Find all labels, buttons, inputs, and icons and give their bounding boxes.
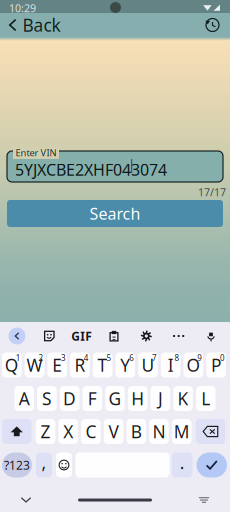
button[interactable]: Period [172, 452, 192, 477]
button[interactable]: Clipboard [103, 325, 125, 347]
button[interactable]: S [37, 386, 57, 411]
staticText: Enter VIN [15, 146, 56, 159]
staticText: Q [5, 353, 19, 376]
button[interactable]: Enter [196, 452, 227, 477]
staticText: U [141, 353, 154, 376]
staticText: H [131, 387, 144, 410]
staticText: 9 [197, 353, 202, 363]
button[interactable]: D [60, 386, 79, 411]
button[interactable]: P [206, 352, 226, 377]
button[interactable]: Backspace [196, 419, 225, 444]
button[interactable]: Switch keyboard [190, 489, 218, 511]
button[interactable]: GIF [71, 325, 93, 347]
button[interactable]: R [70, 352, 90, 377]
staticText: L [201, 387, 210, 410]
staticText: 2 [38, 353, 43, 363]
button[interactable]: W [25, 352, 44, 377]
button[interactable]: Comma [36, 452, 52, 477]
staticText: ?123 [4, 457, 30, 473]
staticText: B [131, 420, 142, 443]
staticText: O [186, 353, 200, 376]
button[interactable]: Numbers and symbols [2, 452, 32, 477]
button[interactable]: U [138, 352, 158, 377]
staticText: C [85, 420, 96, 443]
button[interactable]: L [196, 386, 216, 411]
staticText: . [180, 451, 185, 474]
staticText: 5YJXCBE2XHF043074 [15, 159, 167, 180]
staticText: E [52, 353, 62, 376]
button[interactable]: G [105, 386, 125, 411]
button[interactable]: E [47, 352, 67, 377]
button[interactable]: B [126, 419, 146, 444]
staticText: D [63, 387, 76, 410]
staticText: T [98, 353, 108, 376]
button[interactable]: M [172, 419, 191, 444]
staticText: 8 [175, 353, 180, 363]
staticText: 1 [16, 353, 21, 363]
button[interactable]: X [58, 419, 78, 444]
button[interactable]: K [173, 386, 193, 411]
button[interactable]: Shift [2, 419, 31, 444]
button[interactable]: F [82, 386, 102, 411]
button[interactable]: Z [36, 419, 55, 444]
staticText: Y [120, 353, 130, 376]
button[interactable]: Search [7, 200, 223, 227]
button[interactable]: Back [6, 325, 28, 347]
button[interactable]: Emoji [56, 452, 72, 477]
staticText: M [174, 420, 190, 443]
staticText: 3 [61, 353, 66, 363]
staticText: A [19, 387, 30, 410]
staticText: S [42, 387, 52, 410]
staticText: Back [22, 13, 60, 36]
staticText: K [178, 387, 189, 410]
staticText: 6 [129, 353, 134, 363]
staticText: Search [89, 203, 140, 224]
staticText: V [109, 420, 119, 443]
staticText: 0 [220, 353, 225, 363]
button[interactable]: I [161, 352, 180, 377]
button[interactable]: Stickers [38, 325, 60, 347]
button[interactable]: Q [2, 352, 22, 377]
button[interactable]: T [93, 352, 112, 377]
staticText: R [74, 353, 85, 376]
staticText: P [211, 353, 221, 376]
button[interactable]: Back [0, 13, 72, 37]
staticText: X [63, 420, 73, 443]
button[interactable]: V [104, 419, 123, 444]
button[interactable]: A [14, 386, 34, 411]
button[interactable]: Voice input [200, 325, 222, 347]
staticText: 7 [152, 353, 157, 363]
button[interactable]: O [184, 352, 203, 377]
staticText: Z [40, 420, 50, 443]
staticText: F [88, 387, 97, 410]
staticText: 4 [84, 353, 89, 363]
staticText: N [152, 420, 165, 443]
staticText: 10:29 [9, 1, 36, 15]
button[interactable]: More [168, 325, 190, 347]
button[interactable]: H [128, 386, 147, 411]
button[interactable]: History [195, 13, 230, 37]
button[interactable]: Y [115, 352, 135, 377]
staticText: I [168, 353, 174, 376]
button[interactable]: N [149, 419, 169, 444]
staticText: 17/17 [198, 185, 226, 199]
staticText: GIF [71, 328, 92, 344]
staticText: W [26, 353, 42, 376]
button[interactable]: J [151, 386, 170, 411]
staticText: , [41, 451, 46, 474]
button[interactable]: Settings [135, 325, 157, 347]
staticText: 5 [106, 353, 111, 363]
staticText: G [108, 387, 121, 410]
button[interactable]: C [81, 419, 101, 444]
staticText: J [158, 387, 163, 410]
button[interactable]: Hide keyboard [12, 489, 40, 511]
